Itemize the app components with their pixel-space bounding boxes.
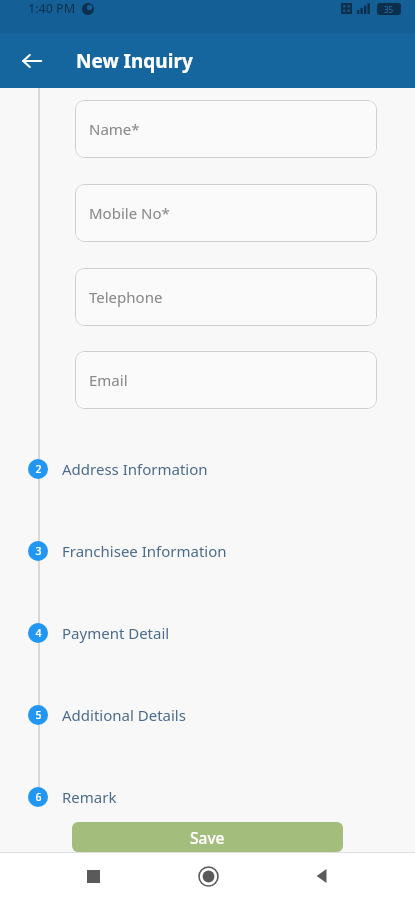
button[interactable]: 3	[0, 538, 415, 564]
staticText: 6	[35, 790, 42, 804]
staticText: 2	[35, 462, 42, 476]
staticText: Name*	[89, 119, 140, 139]
staticText: 3	[35, 544, 42, 558]
button[interactable]: Save	[72, 822, 343, 852]
staticText: Save	[190, 827, 225, 848]
button[interactable]: Home	[187, 855, 229, 897]
staticText: Franchisee Information	[62, 541, 227, 561]
button[interactable]: 5	[0, 702, 415, 728]
staticText: 4	[35, 626, 42, 640]
staticText: 1:40 PM	[28, 0, 76, 17]
button[interactable]: Telephone	[75, 268, 377, 326]
staticText: Remark	[62, 787, 117, 807]
staticText: Payment Detail	[62, 623, 170, 643]
staticText: 35	[384, 4, 394, 15]
button[interactable]: Email	[75, 351, 377, 409]
button[interactable]: 4	[0, 620, 415, 646]
button[interactable]: Recents	[72, 855, 114, 897]
staticText: Mobile No*	[89, 203, 170, 223]
button[interactable]: Name*	[75, 100, 377, 158]
button[interactable]: Mobile No*	[75, 184, 377, 242]
staticText: 5	[35, 708, 42, 722]
button[interactable]: Back	[301, 855, 343, 897]
button[interactable]: Back	[12, 41, 52, 81]
staticText: Address Information	[62, 459, 208, 479]
staticText: Additional Details	[62, 705, 186, 725]
staticText: Email	[89, 370, 128, 390]
button[interactable]: 6	[0, 784, 415, 810]
staticText: Telephone	[89, 287, 163, 307]
button[interactable]: 2	[0, 456, 415, 482]
staticText: New Inquiry	[76, 48, 193, 74]
